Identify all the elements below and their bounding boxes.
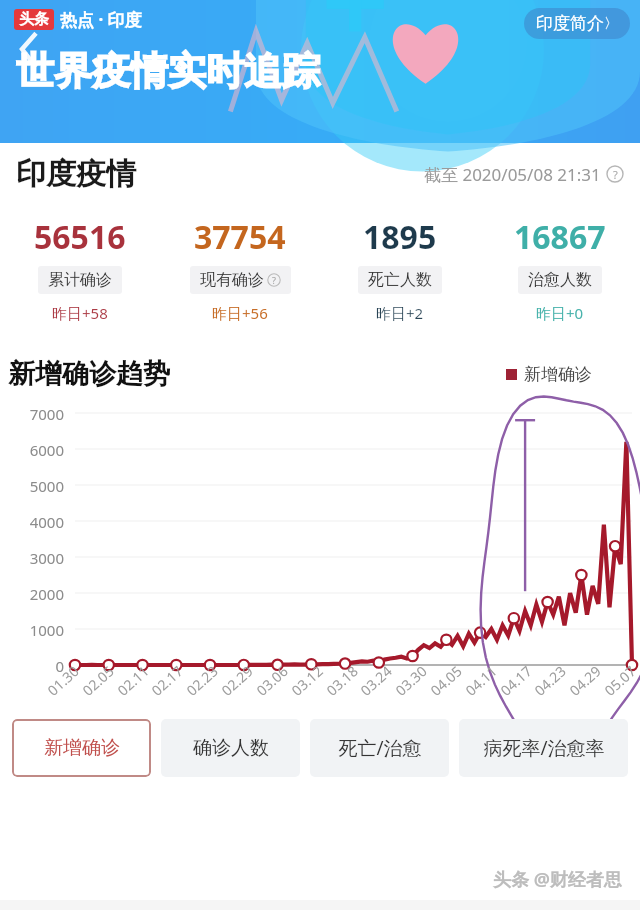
button[interactable]: 1895 [320,215,480,323]
staticText: 昨日+0 [536,303,584,323]
staticText: 截至 2020/05/08 21:31 [424,163,601,186]
staticText: 确诊人数 [193,736,269,760]
button[interactable]: 死亡/治愈 [310,719,449,777]
staticText: 04.29 [565,661,605,700]
staticText: 新增确诊 [44,736,120,760]
button[interactable]: 病死率/治愈率 [459,719,628,777]
staticText: 02.29 [217,661,257,700]
staticText: 56516 [34,215,126,259]
button[interactable]: 印度简介 [524,8,630,39]
button[interactable]: 确诊人数 [161,719,300,777]
staticText: ? [272,274,276,286]
staticText: 印度简介 [536,13,604,34]
staticText: 昨日+58 [52,303,108,323]
staticText: 死亡/治愈 [338,735,422,761]
staticText: 累计确诊 [48,270,112,290]
staticText: 03.12 [287,661,327,700]
staticText: 03.06 [252,661,292,700]
staticText: 6000 [8,440,64,460]
staticText: 新增确诊趋势 [8,357,170,391]
staticText: 02.23 [182,661,222,700]
staticText: 世界疫情实时追踪 [16,47,320,95]
staticText: 03.18 [322,661,362,700]
staticText: ? [613,167,618,182]
staticText: 〉 [604,15,618,33]
staticText: 01.30 [43,661,83,700]
staticText: 02.05 [78,661,118,700]
staticText: 昨日+56 [212,303,268,323]
staticText: 03.24 [356,661,396,700]
staticText: 03.30 [391,661,431,700]
staticText: 05.07 [600,661,640,700]
staticText: 02.11 [113,661,153,700]
staticText: 死亡人数 [368,270,432,290]
staticText: 02.17 [147,661,187,700]
staticText: 治愈人数 [528,270,592,290]
staticText: 现有确诊 [200,270,264,290]
staticText: 7000 [8,404,64,424]
staticText: 0 [8,656,64,676]
button[interactable]: 说明 [606,165,624,183]
button[interactable]: 37754 [160,215,320,323]
staticText: 04.05 [426,661,466,700]
button[interactable]: 新增确诊 [12,719,151,777]
staticText: 04.11 [461,661,501,700]
staticText: 新增确诊 [524,364,592,385]
staticText: 头条 @财经者思 [493,867,622,892]
staticText: 1000 [8,620,64,640]
staticText: 37754 [194,215,286,259]
staticText: 04.23 [530,661,570,700]
button[interactable]: 56516 [0,215,160,323]
staticText: 4000 [8,512,64,532]
staticText: 病死率/治愈率 [483,735,605,761]
staticText: 热点 · 印度 [60,8,142,31]
staticText: 印度疫情 [16,155,136,193]
staticText: 3000 [8,548,64,568]
staticText: 头条 [19,10,49,29]
staticText: 5000 [8,476,64,496]
staticText: 04.17 [496,661,536,700]
staticText: 昨日+2 [376,303,424,323]
button[interactable]: 16867 [480,215,640,323]
staticText: 2000 [8,584,64,604]
staticText: 16867 [514,215,606,259]
staticText: 1895 [363,215,437,259]
